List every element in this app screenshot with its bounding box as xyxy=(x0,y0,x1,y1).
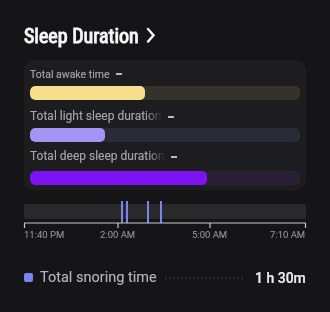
staticText: 1 h 30m xyxy=(255,270,306,286)
staticText: Total deep sleep duration xyxy=(30,149,165,163)
button[interactable]: Sleep Duration xyxy=(24,24,155,47)
staticText: Total awake time xyxy=(30,68,110,80)
staticText: 2:00 AM xyxy=(100,229,136,240)
staticText: 11:40 PM xyxy=(24,229,65,240)
staticText: Total snoring time xyxy=(40,269,157,286)
staticText: 5:00 AM xyxy=(192,229,228,240)
button[interactable]: Total snoring time xyxy=(24,269,306,286)
staticText: Total light sleep duration xyxy=(30,109,162,123)
staticText: Sleep Duration xyxy=(24,24,139,47)
staticText: 7:10 AM xyxy=(270,229,306,240)
button[interactable]: Total awake time xyxy=(24,60,306,190)
